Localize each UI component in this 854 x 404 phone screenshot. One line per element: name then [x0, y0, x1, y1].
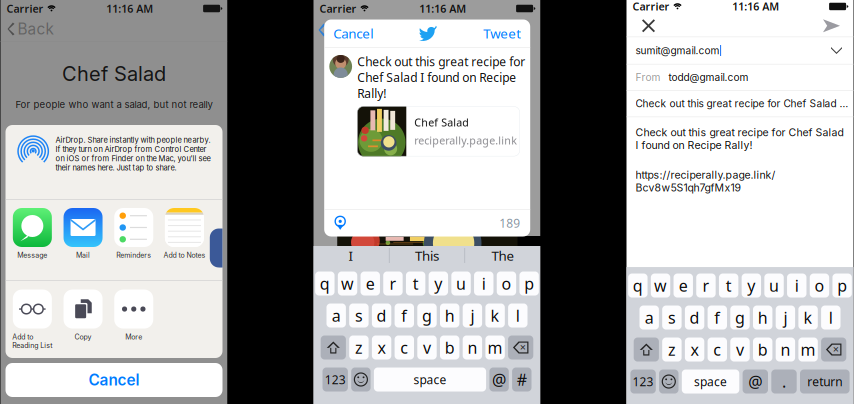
button[interactable]: Add location — [334, 216, 346, 230]
button[interactable]: Reminders — [108, 208, 159, 288]
button[interactable]: l — [821, 305, 840, 329]
button[interactable]: d — [372, 303, 391, 327]
staticText: @ — [492, 369, 506, 390]
button[interactable]: # — [512, 367, 531, 391]
button[interactable]: g — [417, 303, 437, 327]
button[interactable]: s — [662, 305, 682, 329]
button[interactable]: Close — [633, 14, 663, 38]
staticText: For people who want a salad, but not rea… — [15, 99, 212, 110]
button[interactable]: Emoji keyboard — [659, 369, 678, 393]
button[interactable]: Mail — [58, 208, 108, 288]
button[interactable]: Show recipient fields — [827, 39, 845, 61]
button[interactable]: t — [406, 271, 425, 295]
button[interactable]: space — [374, 367, 486, 391]
button[interactable]: j — [463, 303, 482, 327]
button[interactable]: v — [417, 335, 437, 359]
button[interactable]: Send — [816, 14, 846, 38]
button[interactable]: d — [685, 305, 704, 329]
button[interactable]: s — [349, 303, 369, 327]
button[interactable]: z — [662, 337, 682, 361]
button[interactable]: g — [730, 305, 750, 329]
button[interactable]: a — [639, 305, 659, 329]
button[interactable]: u — [764, 273, 784, 297]
button[interactable]: Emoji keyboard — [351, 367, 371, 391]
button[interactable]: Shift — [321, 335, 346, 359]
staticText: y — [434, 273, 442, 294]
button[interactable]: i — [787, 273, 806, 297]
staticText: n — [780, 339, 790, 360]
button[interactable]: o — [810, 273, 829, 297]
staticText: w — [654, 275, 667, 296]
staticText: c — [713, 339, 721, 360]
button[interactable]: h — [440, 303, 459, 327]
button[interactable]: k — [798, 305, 818, 329]
button[interactable]: Cancel — [5, 363, 222, 397]
button[interactable]: e — [360, 271, 380, 295]
button[interactable]: Cancel — [333, 24, 373, 42]
staticText: Reminders — [116, 251, 151, 259]
button[interactable]: More — [108, 290, 159, 368]
button[interactable]: a — [326, 303, 346, 327]
button[interactable]: x — [372, 335, 391, 359]
button[interactable]: space — [682, 369, 739, 393]
button[interactable]: m — [798, 337, 818, 361]
staticText: q — [633, 275, 643, 296]
button[interactable]: c — [708, 337, 727, 361]
button[interactable]: y — [742, 273, 761, 297]
button[interactable]: x — [685, 337, 704, 361]
button[interactable]: h — [753, 305, 772, 329]
staticText: Carrier — [319, 1, 356, 16]
button[interactable]: Tweet — [483, 24, 521, 42]
button[interactable]: b — [753, 337, 772, 361]
staticText: c — [400, 337, 408, 358]
staticText: Carrier — [632, 0, 669, 14]
button[interactable]: t — [719, 273, 738, 297]
button[interactable]: z — [349, 335, 369, 359]
staticText: Back — [17, 20, 53, 38]
button[interactable]: o — [497, 271, 516, 295]
button[interactable]: r — [696, 273, 716, 297]
button[interactable]: n — [463, 335, 482, 359]
button[interactable]: f — [708, 305, 727, 329]
button[interactable]: q — [628, 273, 647, 297]
staticText: u — [456, 273, 466, 294]
button[interactable]: 123 — [322, 367, 348, 391]
staticText: Message — [17, 251, 47, 259]
button[interactable]: n — [776, 337, 795, 361]
button[interactable]: y — [429, 271, 448, 295]
staticText: v — [736, 339, 744, 360]
button[interactable]: . — [771, 369, 797, 393]
button[interactable]: @ — [489, 367, 509, 391]
button[interactable]: k — [485, 303, 505, 327]
button[interactable]: p — [519, 271, 539, 295]
button[interactable]: l — [508, 303, 527, 327]
button[interactable]: j — [776, 305, 795, 329]
button[interactable]: c — [395, 335, 414, 359]
button[interactable]: return — [800, 369, 850, 393]
button[interactable]: i — [474, 271, 493, 295]
button[interactable]: r — [383, 271, 403, 295]
button[interactable]: w — [338, 271, 357, 295]
button[interactable]: Copy — [58, 290, 108, 368]
button[interactable]: e — [673, 273, 693, 297]
button[interactable]: f — [395, 303, 414, 327]
button[interactable]: p — [832, 273, 852, 297]
button[interactable]: @ — [743, 369, 768, 393]
button[interactable]: 123 — [630, 369, 656, 393]
button[interactable]: Delete — [508, 335, 533, 359]
staticText: 11:16 AM — [106, 1, 153, 16]
button[interactable]: Shift — [634, 337, 659, 361]
button[interactable]: Add to Reading List — [7, 290, 58, 368]
button[interactable]: b — [440, 335, 459, 359]
button[interactable]: Add to Notes — [159, 208, 210, 288]
button[interactable]: v — [730, 337, 750, 361]
button[interactable]: u — [451, 271, 471, 295]
staticText: Cancel — [88, 371, 139, 389]
button[interactable]: m — [485, 335, 505, 359]
button[interactable]: Back — [0, 17, 227, 41]
button[interactable]: w — [651, 273, 670, 297]
button[interactable]: Message — [7, 208, 58, 288]
staticText: t — [726, 275, 732, 296]
button[interactable]: q — [315, 271, 334, 295]
button[interactable]: Delete — [821, 337, 846, 361]
